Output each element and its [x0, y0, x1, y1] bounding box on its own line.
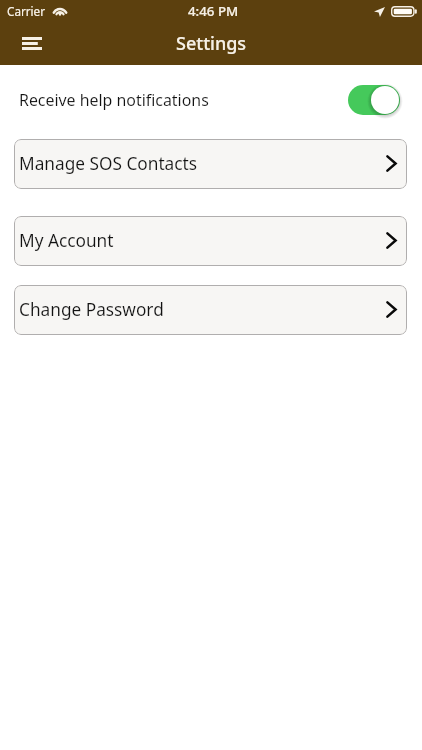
staticText: Receive help notifications	[19, 89, 209, 111]
staticText: Settings	[176, 31, 247, 56]
button[interactable]: My Account	[14, 216, 407, 266]
button[interactable]: Menu	[22, 28, 52, 58]
staticText: My Account	[19, 229, 114, 252]
other: Location	[374, 7, 385, 17]
button[interactable]: Manage SOS Contacts	[14, 139, 407, 189]
staticText: Carrier	[7, 3, 46, 19]
staticText: 4:46 PM	[188, 2, 239, 20]
button[interactable]: Change Password	[14, 285, 407, 335]
staticText: Change Password	[19, 298, 164, 321]
staticText: Manage SOS Contacts	[19, 152, 198, 175]
button[interactable]: Receive help notifications toggle	[348, 85, 400, 115]
